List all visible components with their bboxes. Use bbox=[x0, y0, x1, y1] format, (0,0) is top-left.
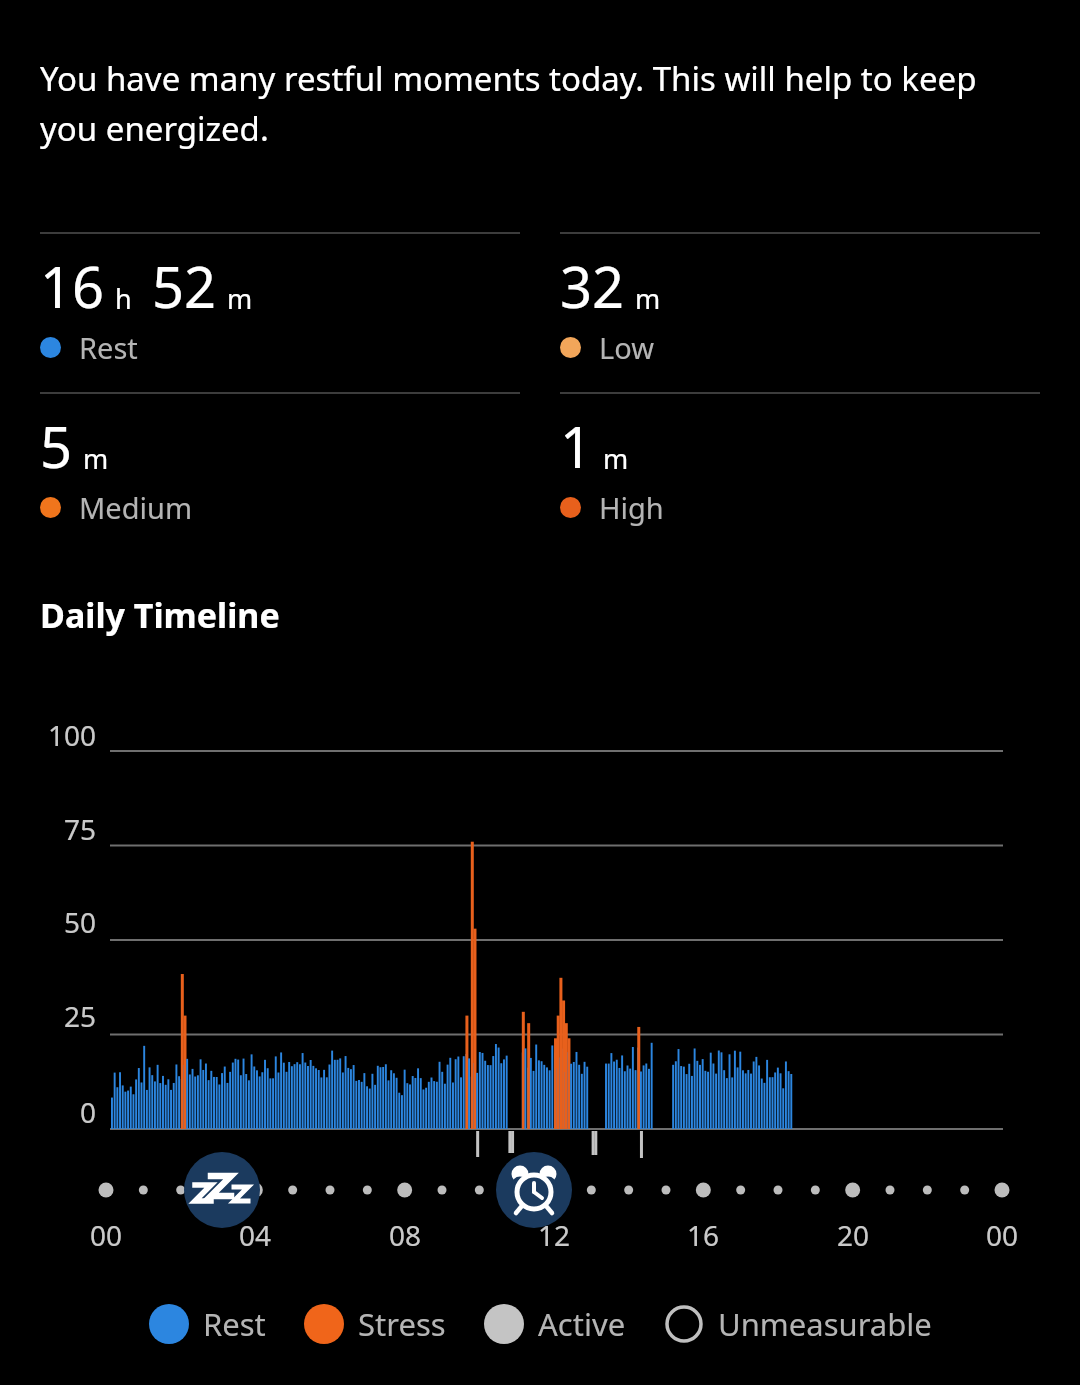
staticText: 00 bbox=[962, 1216, 1042, 1254]
staticText: 08 bbox=[365, 1216, 445, 1254]
staticText: 04 bbox=[215, 1216, 295, 1254]
staticText: 0 bbox=[0, 1093, 96, 1131]
staticText: m bbox=[635, 280, 661, 317]
staticText: 5 bbox=[40, 408, 73, 484]
staticText: 20 bbox=[813, 1216, 893, 1254]
button[interactable]: Unmeasurable bbox=[664, 1303, 932, 1345]
staticText: 100 bbox=[0, 716, 96, 754]
staticText: Rest bbox=[79, 328, 138, 367]
staticText: h bbox=[115, 280, 132, 317]
staticText: Medium bbox=[79, 488, 193, 527]
button[interactable]: Rest bbox=[149, 1303, 266, 1345]
staticText: 32 bbox=[560, 248, 625, 324]
button[interactable]: Stress bbox=[304, 1303, 446, 1345]
button[interactable]: 5 bbox=[40, 392, 520, 527]
staticText: You have many restful moments today. Thi… bbox=[40, 56, 1000, 151]
staticText: 75 bbox=[0, 810, 96, 848]
staticText: 00 bbox=[66, 1216, 146, 1254]
button[interactable]: Active bbox=[484, 1303, 626, 1345]
button[interactable]: 1 bbox=[560, 392, 1040, 527]
staticText: Active bbox=[538, 1303, 626, 1345]
staticText: 1 bbox=[560, 408, 593, 484]
staticText: 12 bbox=[514, 1216, 594, 1254]
button[interactable]: 32 bbox=[560, 232, 1040, 367]
staticText: Rest bbox=[203, 1303, 266, 1345]
staticText: m bbox=[603, 440, 629, 477]
staticText: 16 bbox=[40, 248, 105, 324]
staticText: Unmeasurable bbox=[718, 1303, 932, 1345]
staticText: m bbox=[227, 280, 253, 317]
button[interactable]: 16 bbox=[40, 232, 520, 367]
staticText: Stress bbox=[358, 1303, 446, 1345]
staticText: 52 bbox=[152, 248, 217, 324]
staticText: 25 bbox=[0, 997, 96, 1035]
staticText: m bbox=[83, 440, 109, 477]
staticText: Daily Timeline bbox=[40, 592, 280, 638]
staticText: High bbox=[599, 488, 664, 527]
staticText: 50 bbox=[0, 903, 96, 941]
staticText: Low bbox=[599, 328, 654, 367]
staticText: 16 bbox=[663, 1216, 743, 1254]
